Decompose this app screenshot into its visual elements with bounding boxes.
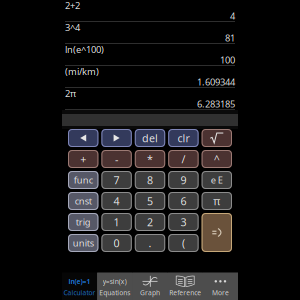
button[interactable]: y=sin(x) xyxy=(97,272,132,300)
button[interactable]: e E xyxy=(202,171,232,189)
staticText: units xyxy=(73,237,94,249)
button[interactable]: units xyxy=(68,234,98,252)
staticText: ^ xyxy=(214,152,220,166)
button[interactable]: + xyxy=(68,150,98,168)
staticText: 81 xyxy=(225,32,235,44)
button[interactable]: func xyxy=(68,171,98,189)
button[interactable]: ln(e)=1 xyxy=(62,272,97,300)
staticText: 3 xyxy=(180,215,186,229)
button[interactable] xyxy=(101,129,132,147)
button[interactable]: 9 xyxy=(168,171,199,189)
button[interactable] xyxy=(202,213,232,252)
button[interactable]: ( xyxy=(168,234,199,252)
button[interactable]: del xyxy=(135,129,165,147)
button[interactable]: 4 xyxy=(101,192,132,210)
staticText: - xyxy=(115,152,118,166)
button[interactable]: - xyxy=(101,150,132,168)
button[interactable]: trig xyxy=(68,213,98,231)
staticText: func xyxy=(74,174,93,186)
button[interactable]: 7 xyxy=(101,171,132,189)
staticText: 7 xyxy=(114,173,120,187)
button[interactable]: 2 xyxy=(135,213,165,231)
button[interactable]: * xyxy=(135,150,165,168)
staticText: trig xyxy=(76,216,91,228)
button[interactable]: More xyxy=(203,272,238,300)
button[interactable]: clr xyxy=(168,129,199,147)
button[interactable]: 0 xyxy=(101,234,132,252)
button[interactable]: 8 xyxy=(135,171,165,189)
staticText: 4 xyxy=(230,10,235,22)
staticText: ln(e^100) xyxy=(65,43,104,56)
staticText: Calculator xyxy=(64,288,96,297)
staticText: e E xyxy=(211,174,223,186)
staticText: ln(e)=1 xyxy=(69,277,91,286)
button[interactable]: 1 xyxy=(101,213,132,231)
button[interactable] xyxy=(68,129,98,147)
button[interactable]: . xyxy=(135,234,165,252)
button[interactable]: / xyxy=(168,150,199,168)
staticText: Equations xyxy=(99,288,130,297)
staticText: Reference xyxy=(169,288,201,297)
staticText: 6 xyxy=(180,194,186,208)
button[interactable]: Graph xyxy=(132,272,168,300)
staticText: 2+2 xyxy=(65,0,80,12)
staticText: y=sin(x) xyxy=(103,277,127,286)
staticText: 1.609344 xyxy=(197,76,235,88)
staticText: 9 xyxy=(180,173,186,187)
staticText: clr xyxy=(177,131,189,145)
staticText: + xyxy=(80,152,86,166)
staticText: 100 xyxy=(220,54,235,66)
staticText: * xyxy=(147,152,153,166)
staticText: / xyxy=(181,152,185,166)
button[interactable] xyxy=(202,129,232,147)
staticText: Graph xyxy=(140,288,160,297)
staticText: 0 xyxy=(114,236,120,250)
staticText: More xyxy=(212,288,229,297)
button[interactable]: Reference xyxy=(168,272,203,300)
button[interactable]: π xyxy=(202,192,232,210)
button[interactable]: 6 xyxy=(168,192,199,210)
staticText: π xyxy=(213,194,220,208)
staticText: 1 xyxy=(114,215,120,229)
staticText: 2π xyxy=(65,87,76,100)
staticText: (mi/km) xyxy=(65,65,99,78)
staticText: 6.283185 xyxy=(197,98,235,110)
staticText: 2 xyxy=(147,215,153,229)
button[interactable]: cnst xyxy=(68,192,98,210)
staticText: 3^4 xyxy=(65,21,80,34)
button[interactable]: ^ xyxy=(202,150,232,168)
staticText: 5 xyxy=(147,194,153,208)
button[interactable]: 5 xyxy=(135,192,165,210)
staticText: del xyxy=(142,131,158,145)
staticText: ( xyxy=(182,236,185,250)
button[interactable]: 3 xyxy=(168,213,199,231)
staticText: cnst xyxy=(75,195,92,207)
staticText: 4 xyxy=(114,194,120,208)
staticText: 8 xyxy=(147,173,153,187)
staticText: . xyxy=(148,236,151,250)
